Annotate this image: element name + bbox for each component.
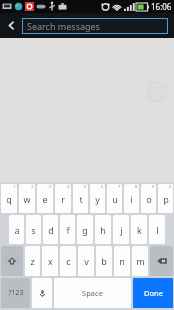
button[interactable]: y (90, 184, 105, 213)
staticText: l (156, 224, 159, 236)
button[interactable]: x (42, 246, 58, 276)
button[interactable]: s (26, 215, 41, 244)
staticText: b (101, 255, 107, 267)
button[interactable]: r (55, 184, 71, 213)
staticText: d (48, 224, 54, 236)
button[interactable]: l (149, 215, 165, 244)
staticText: g (82, 224, 88, 236)
button[interactable]: e (37, 184, 53, 213)
button[interactable]: w (19, 184, 35, 213)
staticText: 8 (135, 184, 138, 189)
staticText: 6 (101, 184, 104, 189)
staticText: i (130, 193, 133, 205)
staticText: m (136, 255, 145, 267)
button[interactable]: v (78, 246, 94, 276)
staticText: 1 (13, 184, 16, 189)
staticText: s (31, 224, 36, 236)
button[interactable]: o (141, 184, 156, 213)
button[interactable]: Voice input (32, 278, 52, 308)
staticText: n (119, 255, 125, 267)
staticText: u (112, 193, 118, 205)
button[interactable]: u (107, 184, 122, 213)
button[interactable]: Backspace (150, 246, 173, 276)
button[interactable]: Search messages (22, 18, 168, 34)
staticText: v (84, 255, 89, 267)
button[interactable]: z (25, 246, 40, 276)
staticText: z (30, 255, 35, 267)
staticText: e (42, 193, 48, 205)
staticText: h (100, 224, 106, 236)
button[interactable]: ?123 (1, 278, 30, 308)
staticText: Done (144, 288, 163, 298)
staticText: 16:06 (151, 1, 172, 12)
staticText: j (120, 224, 123, 236)
button[interactable]: Done (133, 278, 173, 308)
staticText: o (146, 193, 152, 205)
staticText: Space (82, 288, 103, 298)
staticText: t (79, 193, 83, 205)
button[interactable]: d (43, 215, 58, 244)
button[interactable]: a (9, 215, 24, 244)
staticText: Search messages (27, 20, 100, 32)
staticText: c (66, 255, 71, 267)
button[interactable]: f (60, 215, 75, 244)
staticText: f (66, 224, 70, 236)
button[interactable]: Shift (1, 246, 23, 276)
button[interactable]: q (1, 184, 17, 213)
button[interactable]: t (73, 184, 88, 213)
staticText: ?123 (8, 288, 24, 298)
button[interactable]: i (124, 184, 139, 213)
staticText: r (61, 193, 65, 205)
staticText: a (14, 224, 20, 236)
staticText: 2 (31, 184, 34, 189)
button[interactable]: g (77, 215, 93, 244)
button[interactable]: Space (54, 278, 131, 308)
staticText: 4 (67, 184, 70, 189)
button[interactable]: j (113, 215, 129, 244)
button[interactable]: k (131, 215, 147, 244)
button[interactable]: n (114, 246, 130, 276)
button[interactable]: m (132, 246, 148, 276)
button[interactable]: h (95, 215, 111, 244)
staticText: k (137, 224, 142, 236)
staticText: q (6, 193, 12, 205)
button[interactable]: b (96, 246, 112, 276)
staticText: 0 (169, 184, 172, 189)
staticText: y (95, 193, 100, 205)
staticText: w (23, 193, 31, 205)
staticText: 5 (84, 184, 87, 189)
staticText: p (163, 193, 169, 205)
staticText: 7 (118, 184, 121, 189)
staticText: 9 (152, 184, 155, 189)
button[interactable]: Back (0, 13, 22, 38)
button[interactable]: c (60, 246, 76, 276)
staticText: x (48, 255, 53, 267)
button[interactable]: p (158, 184, 173, 213)
staticText: 3 (49, 184, 52, 189)
